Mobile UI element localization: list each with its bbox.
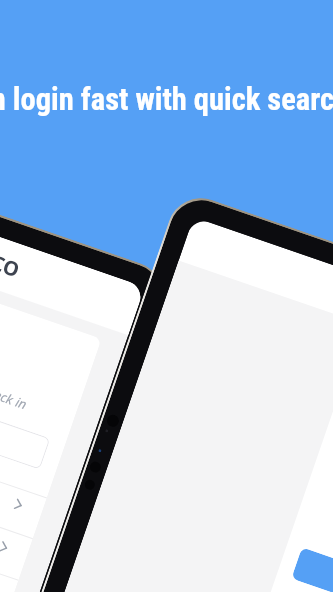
button[interactable]: Open <box>0 400 47 539</box>
button[interactable]: Continue <box>291 547 333 592</box>
staticText: Can login fast with quick search <box>0 82 333 124</box>
other: Open <box>0 538 12 556</box>
button[interactable]: Open <box>0 440 33 580</box>
button[interactable]: Search field <box>0 351 50 470</box>
other: Open <box>9 496 27 513</box>
staticText: CO <box>0 248 53 294</box>
staticText: Check in <box>0 381 69 431</box>
